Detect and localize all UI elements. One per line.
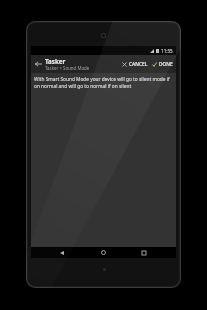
button[interactable]: Tasker [45,57,120,71]
button[interactable]: Home [94,247,112,258]
button[interactable]: Back [53,247,71,258]
button[interactable]: CANCEL [120,55,150,73]
staticText: CANCEL [129,61,148,68]
staticText: Tasker > Sound Mode [45,65,90,71]
button[interactable]: Back [31,55,45,73]
staticText: With Smart Sound Mode your device will g… [34,76,172,89]
staticText: DONE [159,61,173,68]
button[interactable]: Recent apps [135,247,153,258]
staticText: Tasker [45,57,66,65]
button[interactable]: DONE [150,55,176,73]
staticText: 11:55 [161,48,173,54]
